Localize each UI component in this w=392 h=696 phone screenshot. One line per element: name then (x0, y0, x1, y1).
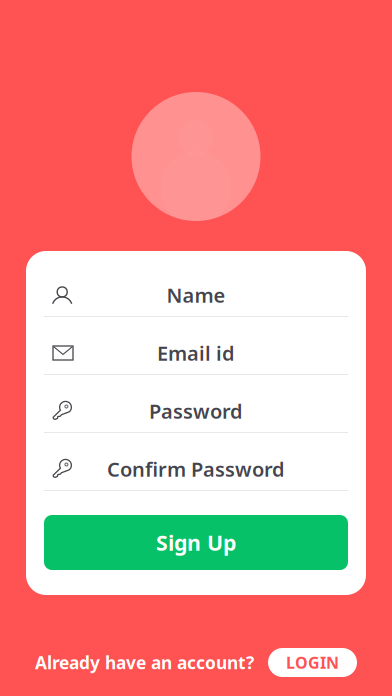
button[interactable]: LOGIN (268, 648, 357, 677)
staticText: Password (149, 398, 243, 424)
staticText: Sign Up (156, 528, 236, 557)
staticText: LOGIN (286, 652, 339, 673)
staticText: Name (166, 282, 225, 308)
staticText: Confirm Password (107, 456, 285, 482)
staticText: Already have an account? (35, 651, 254, 674)
button[interactable]: Sign Up (44, 515, 348, 570)
staticText: Email id (157, 340, 235, 366)
